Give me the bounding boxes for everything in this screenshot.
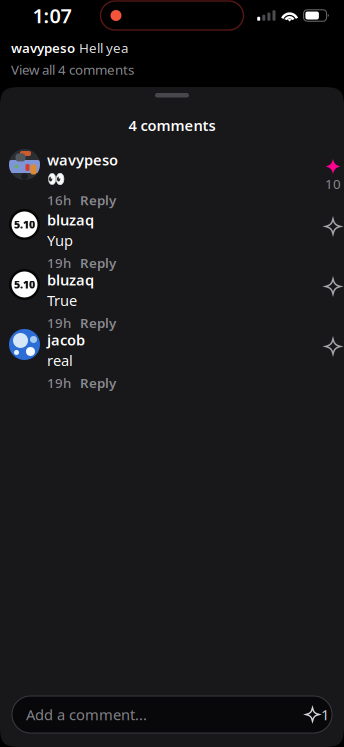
staticText: 19h: [47, 314, 71, 332]
button[interactable]: Reply: [80, 314, 116, 332]
button[interactable]: Reply: [80, 374, 116, 392]
button[interactable]: Like comment: [322, 209, 344, 235]
staticText: jacob: [47, 330, 85, 349]
staticText: Hell yea: [79, 39, 128, 57]
staticText: 19h: [47, 374, 71, 392]
staticText: Reply: [80, 254, 116, 272]
staticText: wavypeso: [11, 39, 75, 57]
button[interactable]: bluzaq profile picture: [9, 209, 40, 240]
button[interactable]: Reply: [80, 191, 116, 209]
button[interactable]: bluzaq profile picture: [9, 269, 40, 300]
staticText: 4 comments: [128, 115, 215, 135]
staticText: 16h: [47, 191, 71, 209]
button[interactable]: Like comment: [322, 149, 344, 193]
staticText: Reply: [80, 314, 116, 332]
button[interactable]: jacob profile picture: [9, 329, 40, 360]
staticText: 5.10: [14, 217, 35, 232]
staticText: View all 4 comments: [11, 61, 134, 78]
staticText: 1: [321, 705, 329, 724]
staticText: 19h: [47, 254, 71, 272]
staticText: bluzaq: [47, 210, 94, 229]
button[interactable]: Like comment: [322, 269, 344, 295]
staticText: 10: [325, 175, 341, 193]
staticText: bluzaq: [47, 270, 94, 289]
staticText: Add a comment...: [26, 705, 147, 724]
staticText: Reply: [80, 374, 116, 392]
staticText: Yup: [47, 230, 73, 250]
staticText: wavypeso: [47, 150, 118, 169]
button[interactable]: wavypeso profile picture: [9, 149, 40, 180]
button[interactable]: Add a comment...: [12, 696, 332, 733]
staticText: 1:07: [32, 2, 71, 29]
staticText: real: [47, 350, 73, 370]
staticText: True: [47, 290, 77, 310]
staticText: Reply: [80, 191, 116, 209]
button[interactable]: Reply: [80, 254, 116, 272]
button[interactable]: Like comment: [322, 329, 344, 355]
staticText: 5.10: [14, 277, 35, 292]
staticText: 👀: [47, 170, 65, 187]
